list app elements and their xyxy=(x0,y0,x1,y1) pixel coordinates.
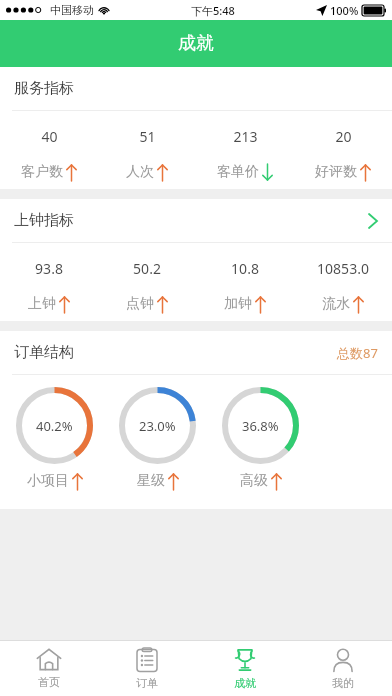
staticText: 10.8 xyxy=(231,259,259,278)
staticText: 星级 xyxy=(137,472,165,490)
staticText: 10853.0 xyxy=(317,259,369,278)
staticText: 人次 xyxy=(126,163,154,181)
staticText: 上钟 xyxy=(28,295,56,313)
staticText: 好评数 xyxy=(315,163,357,181)
staticText: 订单结构 xyxy=(14,343,74,362)
button[interactable]: 首页 xyxy=(0,641,98,696)
staticText: 23.0% xyxy=(139,417,176,435)
staticText: 100% xyxy=(330,3,359,18)
other: More xyxy=(368,213,378,229)
staticText: 成就 xyxy=(178,32,214,55)
staticText: 总数87 xyxy=(337,344,378,362)
button[interactable]: 订单 xyxy=(98,641,196,696)
staticText: 流水 xyxy=(322,295,350,313)
staticText: 点钟 xyxy=(126,295,154,313)
staticText: 服务指标 xyxy=(14,79,74,98)
staticText: 成就 xyxy=(234,676,256,690)
staticText: 40 xyxy=(41,127,58,146)
staticText: 客单价 xyxy=(217,163,259,181)
staticText: 51 xyxy=(139,127,156,146)
staticText: 首页 xyxy=(38,675,60,689)
staticText: 20 xyxy=(335,127,352,146)
button[interactable]: 我的 xyxy=(294,641,392,696)
staticText: 40.2% xyxy=(36,417,73,435)
staticText: 小项目 xyxy=(27,472,69,490)
staticText: 高级 xyxy=(240,472,268,490)
staticText: 36.8% xyxy=(242,417,279,435)
button[interactable]: 上钟指标 xyxy=(0,199,392,321)
staticText: 50.2 xyxy=(133,259,161,278)
staticText: 下午5:48 xyxy=(191,3,235,18)
button[interactable]: 成就 xyxy=(196,641,294,696)
staticText: 中国移动 xyxy=(50,3,94,17)
staticText: 加钟 xyxy=(224,295,252,313)
staticText: 上钟指标 xyxy=(14,211,74,230)
staticText: 订单 xyxy=(136,676,158,690)
staticText: 客户数 xyxy=(21,163,63,181)
staticText: 213 xyxy=(233,127,258,146)
staticText: 我的 xyxy=(332,676,354,690)
staticText: 93.8 xyxy=(35,259,63,278)
